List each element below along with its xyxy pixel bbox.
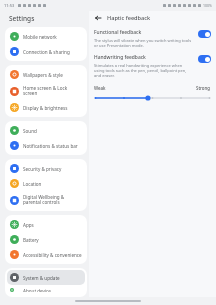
staticText: Haptic feedback: [107, 14, 151, 22]
button[interactable]: Mobile network: [7, 29, 85, 44]
button[interactable]: Sound: [7, 123, 85, 138]
button[interactable]: Handwriting feedback: [94, 54, 211, 78]
button[interactable]: Back: [93, 13, 103, 23]
button[interactable]: Battery: [7, 232, 85, 247]
staticText: Settings: [9, 14, 35, 23]
staticText: Location: [23, 181, 42, 187]
button[interactable]: Toggle Handwriting feedback: [198, 55, 211, 63]
button[interactable]: Security & privacy: [7, 161, 85, 176]
staticText: Weak: [94, 85, 106, 91]
staticText: 100%: [203, 3, 212, 8]
staticText: Battery: [23, 237, 39, 243]
staticText: Home screen & Lock screen: [23, 85, 82, 97]
staticText: Mobile network: [23, 34, 57, 40]
button[interactable]: System & update: [7, 270, 85, 285]
staticText: About device: [23, 288, 51, 292]
staticText: 11:53: [4, 3, 15, 8]
button[interactable]: Haptic strength slider: [94, 94, 211, 102]
staticText: Handwriting feedback: [94, 54, 146, 61]
staticText: Apps: [23, 222, 34, 228]
button[interactable]: Home screen & Lock screen: [7, 82, 85, 100]
staticText: System & update: [23, 275, 60, 281]
button[interactable]: Location: [7, 176, 85, 191]
button[interactable]: Digital Wellbeing & parental controls: [7, 191, 85, 209]
staticText: Accessibility & convenience: [23, 252, 82, 258]
staticText: Security & privacy: [23, 166, 62, 172]
button[interactable]: Apps: [7, 217, 85, 232]
staticText: Connection & sharing: [23, 49, 70, 55]
button[interactable]: Functional feedback: [94, 29, 211, 48]
staticText: Stimulates a real handwriting experience…: [94, 63, 193, 78]
staticText: The stylus will vibrate when you switch …: [94, 38, 193, 48]
staticText: Sound: [23, 128, 37, 134]
button[interactable]: Display & brightness: [7, 100, 85, 115]
staticText: Digital Wellbeing & parental controls: [23, 194, 82, 206]
button[interactable]: Connection & sharing: [7, 44, 85, 59]
button[interactable]: About device: [7, 285, 85, 295]
button[interactable]: Accessibility & convenience: [7, 247, 85, 262]
staticText: Notifications & status bar: [23, 143, 78, 149]
staticText: Strong: [196, 85, 211, 91]
button[interactable]: Toggle Functional feedback: [198, 30, 211, 38]
staticText: Display & brightness: [23, 105, 68, 111]
button[interactable]: Wallpapers & style: [7, 67, 85, 82]
staticText: Functional feedback: [94, 29, 142, 36]
staticText: Wallpapers & style: [23, 72, 63, 78]
button[interactable]: Notifications & status bar: [7, 138, 85, 153]
